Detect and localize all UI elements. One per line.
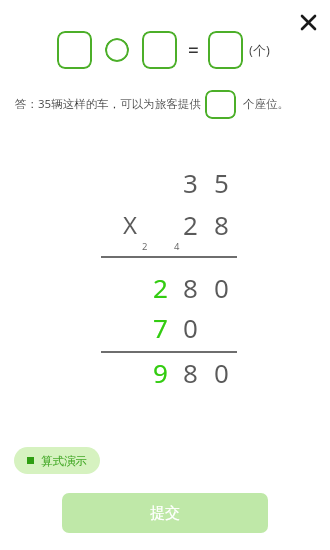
staticText: 个座位。 bbox=[243, 97, 289, 111]
staticText: 0 bbox=[183, 310, 198, 345]
staticText: 8 bbox=[214, 207, 229, 242]
button[interactable]: Close bbox=[292, 6, 324, 38]
button[interactable] bbox=[142, 31, 177, 69]
staticText: = bbox=[188, 37, 199, 63]
button[interactable] bbox=[57, 31, 92, 69]
staticText: X bbox=[123, 208, 138, 241]
staticText: 7 bbox=[153, 310, 168, 345]
staticText: 2 bbox=[183, 207, 198, 242]
staticText: 3 bbox=[183, 165, 198, 200]
staticText: 算式演示 bbox=[41, 454, 87, 468]
button[interactable] bbox=[208, 31, 243, 69]
staticText: (个) bbox=[249, 41, 270, 59]
staticText: 提交 bbox=[150, 504, 180, 523]
staticText: 8 bbox=[183, 270, 198, 305]
staticText: 0 bbox=[214, 355, 229, 390]
staticText: 2 bbox=[142, 240, 148, 253]
button[interactable] bbox=[205, 90, 236, 119]
staticText: 2 bbox=[153, 270, 168, 305]
staticText: 8 bbox=[183, 355, 198, 390]
staticText: 答：35辆这样的车，可以为旅客提供 bbox=[15, 96, 201, 112]
button[interactable] bbox=[105, 38, 129, 62]
staticText: 4 bbox=[174, 240, 180, 253]
button[interactable]: 算式演示 bbox=[14, 447, 100, 474]
staticText: 0 bbox=[214, 270, 229, 305]
staticText: 5 bbox=[214, 165, 229, 200]
button[interactable]: 提交 bbox=[62, 493, 268, 533]
staticText: 9 bbox=[153, 355, 168, 390]
